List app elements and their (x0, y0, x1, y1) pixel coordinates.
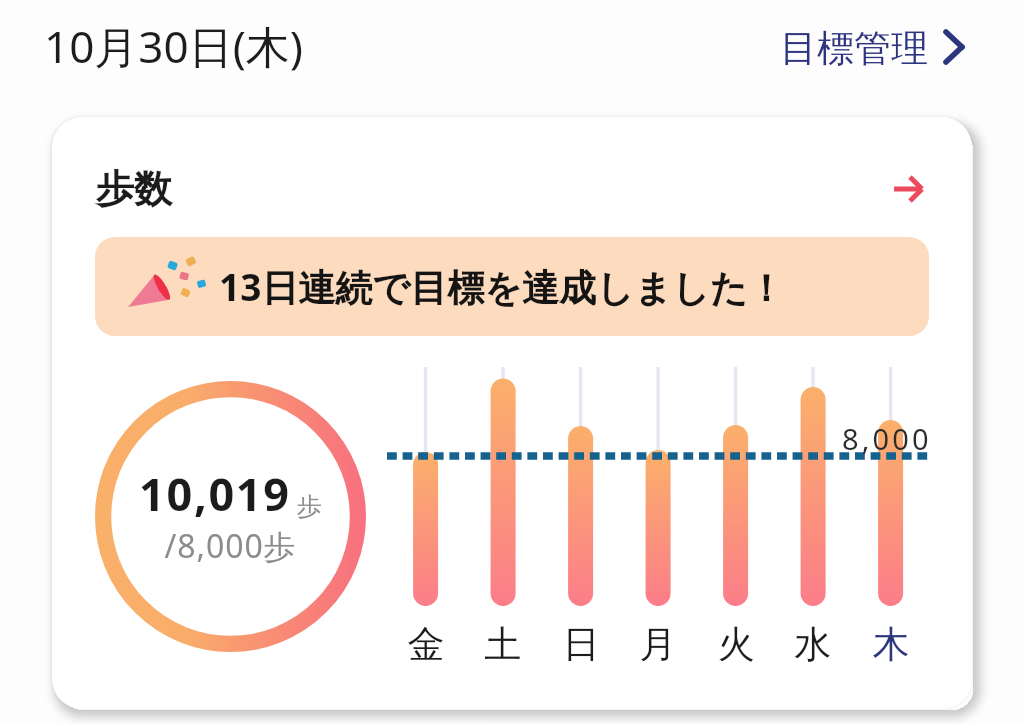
staticText: 8,000 (842, 419, 932, 458)
staticText: 火 (711, 621, 761, 668)
button[interactable]: 詳細を見る (874, 161, 930, 217)
staticText: /8,000歩 (95, 524, 366, 568)
staticText: 歩数 (96, 165, 172, 213)
button[interactable]: 10月30日(木) (44, 16, 304, 76)
staticText: 10,019 (139, 463, 291, 524)
staticText: 13日連続で目標を達成しました！ (219, 261, 785, 312)
button[interactable]: 13日連続で目標を達成しました！ (95, 237, 929, 336)
staticText: 10月30日(木) (44, 16, 304, 76)
staticText: 目標管理 (780, 25, 928, 72)
staticText: 金 (401, 621, 451, 668)
staticText: 水 (788, 621, 838, 668)
button[interactable]: 目標管理 (780, 22, 986, 74)
staticText: 歩 (297, 491, 322, 522)
staticText: 土 (478, 621, 528, 668)
staticText: 月 (633, 621, 683, 668)
staticText: 日 (556, 621, 606, 668)
button[interactable]: 歩数 (96, 165, 172, 213)
staticText: 木 (866, 621, 916, 668)
